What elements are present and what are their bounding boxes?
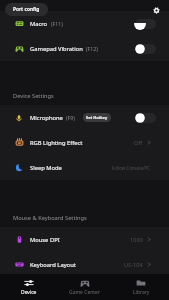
button[interactable]: Settings (150, 4, 162, 16)
staticText: Off (134, 139, 143, 147)
button[interactable]: Set Hotkey (83, 113, 111, 122)
staticText: Port config (13, 6, 40, 13)
staticText: Mouse & Keyboard Settings (13, 214, 87, 222)
button[interactable]: Library (113, 274, 169, 300)
staticText: Mouse DPI (30, 236, 60, 244)
staticText: Sleep Mode (30, 164, 62, 172)
button[interactable]: Toggle (135, 113, 156, 123)
staticText: 1000 (130, 236, 143, 244)
staticText: Macro (30, 20, 48, 28)
button[interactable]: Port config (5, 3, 48, 16)
button[interactable]: Mouse DPI (0, 227, 169, 252)
staticText: Device Settings (13, 92, 54, 100)
staticText: Set Hotkey (86, 115, 108, 120)
button[interactable]: Microphone (0, 105, 169, 130)
staticText: Gamepad Vibration (30, 45, 83, 53)
staticText: Keyboard Layout (30, 261, 76, 269)
button[interactable]: Macro (0, 11, 169, 36)
staticText: (F9) (66, 114, 75, 121)
staticText: Microphone (30, 114, 63, 122)
button[interactable]: Toggle (135, 44, 156, 54)
staticText: Device (21, 289, 37, 296)
staticText: Library (133, 289, 150, 296)
button[interactable]: Toggle (135, 19, 156, 29)
staticText: (F12) (86, 45, 98, 52)
staticText: US-104 (124, 261, 143, 269)
button[interactable]: Sleep Mode (0, 155, 169, 180)
button[interactable]: Keyboard Layout (0, 252, 169, 277)
staticText: Follow Console/PC (112, 165, 150, 171)
button[interactable]: Gamepad Vibration (0, 36, 169, 61)
button[interactable]: Device (0, 274, 57, 300)
staticText: (F11) (51, 20, 63, 27)
staticText: RGB Lighting Effect (30, 139, 83, 147)
button[interactable]: RGB Lighting Effect (0, 130, 169, 155)
staticText: Game Center (69, 289, 101, 296)
button[interactable]: Game Center (57, 274, 113, 300)
